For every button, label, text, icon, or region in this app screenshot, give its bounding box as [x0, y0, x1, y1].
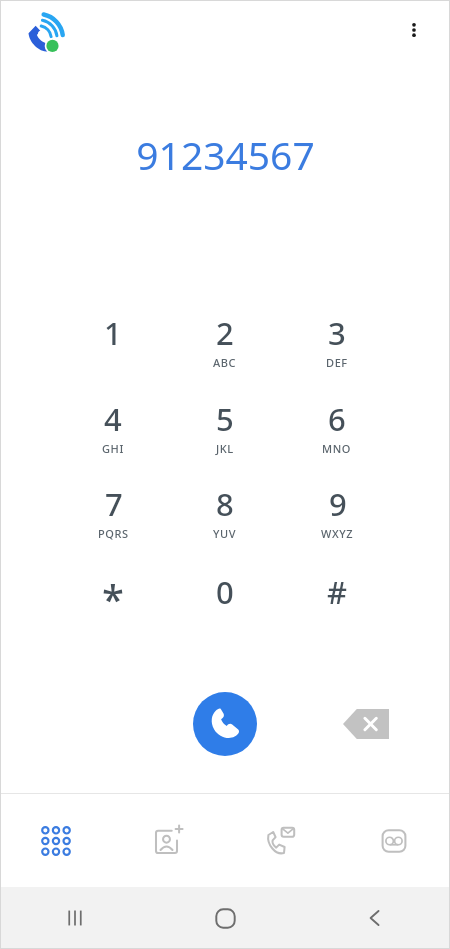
- button[interactable]: 9: [285, 483, 389, 555]
- button[interactable]: 1: [61, 312, 165, 384]
- staticText: WXYZ: [321, 526, 354, 541]
- button[interactable]: 5: [173, 398, 277, 470]
- staticText: 8: [216, 483, 234, 525]
- staticText: 1: [104, 312, 122, 354]
- staticText: JKL: [216, 441, 234, 456]
- button[interactable]: Recent apps: [0, 887, 150, 949]
- staticText: DEF: [326, 355, 348, 370]
- button[interactable]: Call: [193, 692, 257, 756]
- staticText: GHI: [102, 441, 124, 456]
- button[interactable]: Back: [300, 887, 450, 949]
- button[interactable]: 6: [285, 398, 389, 470]
- staticText: ABC: [213, 355, 237, 370]
- button[interactable]: Delete: [333, 700, 399, 748]
- staticText: 7: [105, 483, 123, 525]
- button[interactable]: 0: [173, 571, 277, 643]
- button[interactable]: Dialpad: [0, 794, 112, 887]
- staticText: PQRS: [98, 526, 129, 541]
- staticText: 2: [216, 312, 234, 354]
- button[interactable]: Voicemail: [337, 794, 450, 887]
- button[interactable]: Wi-Fi calling: [26, 14, 68, 56]
- button[interactable]: 2: [173, 312, 277, 384]
- staticText: 3: [328, 312, 346, 354]
- staticText: 4: [104, 398, 122, 440]
- button[interactable]: 7: [61, 483, 165, 555]
- button[interactable]: More options: [392, 8, 436, 52]
- staticText: #: [327, 571, 348, 613]
- button[interactable]: #: [285, 571, 389, 643]
- staticText: 91234567: [136, 128, 315, 181]
- button[interactable]: 8: [173, 483, 277, 555]
- staticText: *: [102, 571, 124, 625]
- button[interactable]: Add contact: [112, 794, 224, 887]
- button[interactable]: Recents: [224, 794, 337, 887]
- staticText: YUV: [213, 526, 237, 541]
- staticText: 0: [216, 571, 234, 613]
- button[interactable]: 4: [61, 398, 165, 470]
- button[interactable]: 3: [285, 312, 389, 384]
- button[interactable]: Home: [150, 887, 300, 949]
- staticText: 9: [329, 483, 347, 525]
- staticText: 5: [216, 398, 234, 440]
- button[interactable]: *: [61, 571, 165, 643]
- staticText: MNO: [322, 441, 352, 456]
- staticText: 6: [328, 398, 346, 440]
